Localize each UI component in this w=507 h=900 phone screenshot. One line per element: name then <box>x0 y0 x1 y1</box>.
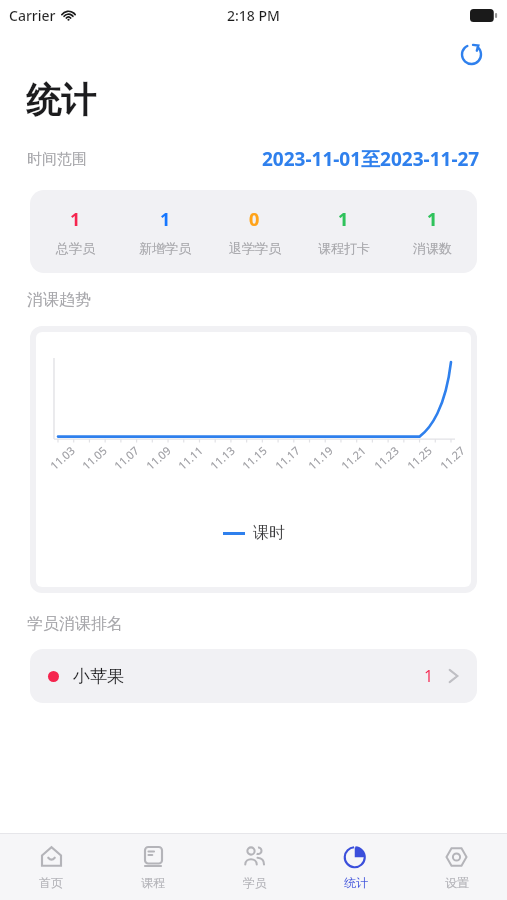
staticText: 11.07 <box>111 442 142 473</box>
staticText: 课时 <box>253 523 285 543</box>
staticText: 学员消课排名 <box>27 614 123 634</box>
staticText: 11.19 <box>305 442 336 473</box>
staticText: 课程 <box>141 875 165 890</box>
staticText: 退学学员 <box>229 240 281 256</box>
staticText: 11.13 <box>207 442 238 473</box>
button[interactable]: 1 <box>299 207 388 256</box>
button[interactable]: 小苹果 <box>30 649 477 703</box>
staticText: 0 <box>249 207 260 232</box>
staticText: 统计 <box>344 875 368 890</box>
button[interactable]: 1 <box>388 207 477 256</box>
staticText: 11.27 <box>437 442 468 473</box>
staticText: Carrier <box>9 6 56 25</box>
staticText: 设置 <box>445 875 469 890</box>
staticText: 11.03 <box>47 442 78 473</box>
staticText: 11.11 <box>175 442 206 473</box>
staticText: 11.25 <box>404 442 435 473</box>
staticText: 统计 <box>26 78 96 122</box>
button[interactable]: 课程 <box>102 834 204 900</box>
button[interactable]: 时间范围 <box>27 146 480 172</box>
staticText: 2:18 PM <box>227 6 280 25</box>
button[interactable]: 0 <box>210 207 299 256</box>
staticText: 11.09 <box>143 442 174 473</box>
staticText: 11.21 <box>338 442 369 473</box>
staticText: 1 <box>424 665 434 687</box>
staticText: 11.05 <box>79 442 110 473</box>
staticText: 时间范围 <box>27 150 87 169</box>
staticText: 学员 <box>243 875 267 890</box>
staticText: 1 <box>427 207 438 232</box>
button[interactable]: 设置 <box>406 834 507 900</box>
button[interactable]: Refresh <box>453 36 489 72</box>
staticText: 消课趋势 <box>27 290 91 310</box>
staticText: 小苹果 <box>73 666 124 687</box>
staticText: 新增学员 <box>139 240 191 256</box>
button[interactable]: 学员 <box>204 834 305 900</box>
button[interactable]: 1 <box>120 207 210 256</box>
staticText: 课程打卡 <box>318 240 370 256</box>
staticText: 2023-11-01至2023-11-27 <box>262 146 480 172</box>
button[interactable]: 课时 <box>223 523 285 543</box>
button[interactable]: 首页 <box>0 834 102 900</box>
staticText: 总学员 <box>56 240 95 256</box>
staticText: 首页 <box>39 875 63 890</box>
staticText: 消课数 <box>413 240 452 256</box>
button[interactable]: 1 <box>30 207 120 256</box>
staticText: 11.15 <box>239 442 270 473</box>
staticText: 1 <box>338 207 349 232</box>
button[interactable]: 统计 <box>305 834 406 900</box>
staticText: 1 <box>70 207 81 232</box>
staticText: 11.23 <box>371 442 402 473</box>
staticText: 1 <box>160 207 171 232</box>
staticText: 11.17 <box>272 442 303 473</box>
